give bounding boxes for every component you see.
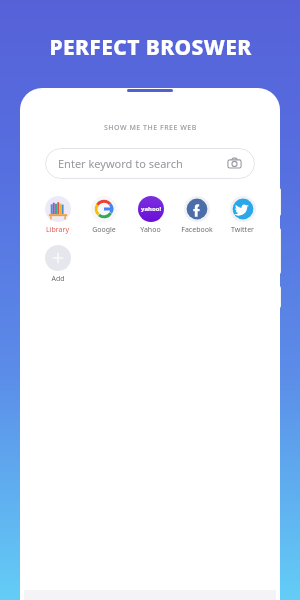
staticText: Facebook	[181, 225, 213, 235]
staticText: Add	[51, 274, 65, 284]
button[interactable]: Add	[37, 244, 78, 285]
button[interactable]: yahoo!	[130, 195, 171, 236]
staticText: PERFECT BROSWER	[49, 33, 252, 62]
staticText: Google	[92, 225, 116, 235]
staticText: Yahoo	[140, 225, 161, 235]
staticText: Twitter	[231, 225, 254, 235]
staticText: Library	[46, 225, 69, 235]
button[interactable]: Google	[83, 195, 124, 236]
other: Search by camera	[227, 156, 242, 171]
button[interactable]: Facebook	[176, 195, 217, 236]
staticText: yahoo!	[141, 205, 162, 213]
button[interactable]: Library	[37, 195, 78, 236]
button[interactable]: Enter keyword to search	[45, 148, 255, 179]
button[interactable]: Twitter	[222, 195, 263, 236]
staticText: Enter keyword to search	[58, 156, 227, 171]
staticText: SHOW ME THE FREE WEB	[104, 123, 197, 133]
